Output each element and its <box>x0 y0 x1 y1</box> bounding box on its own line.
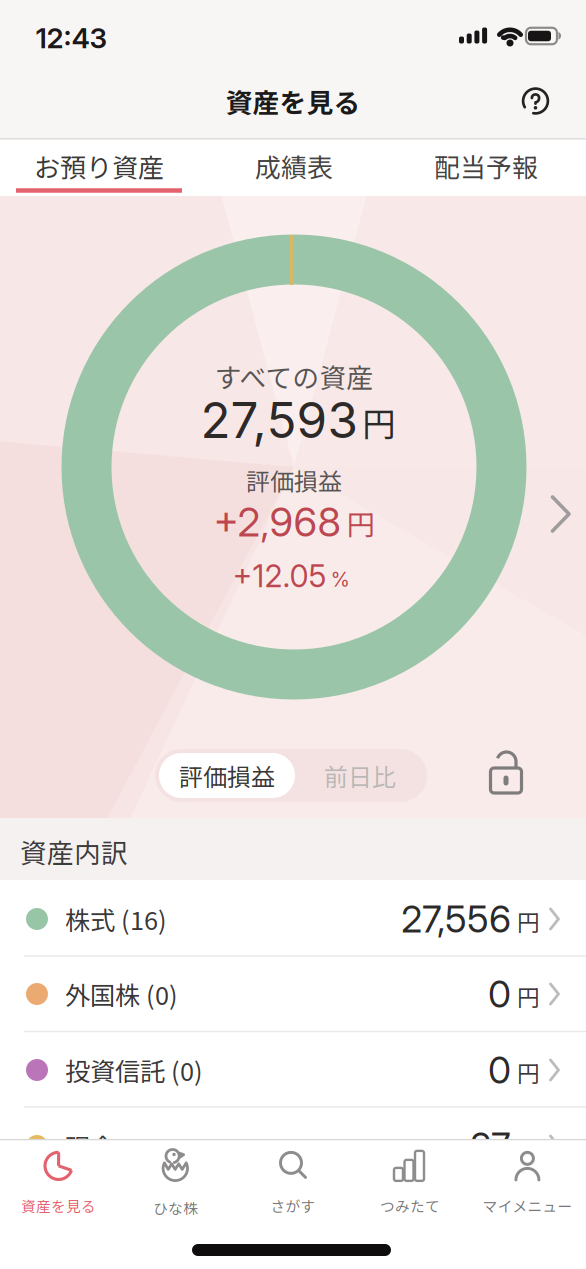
button[interactable]: 株式 (16) <box>0 881 586 956</box>
staticText: すべての資産 <box>214 357 373 395</box>
button[interactable]: マイメニュー <box>469 1141 586 1225</box>
staticText: つみたて <box>380 1195 440 1216</box>
button[interactable]: 成績表 <box>219 138 369 194</box>
staticText: 27,593 <box>200 390 357 450</box>
staticText: 前日比 <box>324 758 396 793</box>
staticText: 成績表 <box>255 147 333 185</box>
staticText: 0 <box>488 1047 511 1093</box>
button[interactable]: ヘルプ <box>521 87 549 115</box>
button[interactable]: 前日比 <box>295 749 425 802</box>
staticText: 資産内訳 <box>20 832 128 871</box>
button[interactable]: さがす <box>234 1141 351 1225</box>
button[interactable]: 評価損益 <box>159 749 295 802</box>
staticText: 投資信託 (0) <box>65 1052 203 1088</box>
staticText: 円 <box>362 398 395 446</box>
staticText: 資産を見る <box>21 1195 96 1216</box>
button[interactable]: 現金 <box>0 1108 586 1183</box>
button[interactable]: ひな株 <box>117 1141 234 1225</box>
staticText: +12.05 <box>232 557 326 594</box>
staticText: 現金 <box>65 1128 115 1164</box>
staticText: マイメニュー <box>482 1195 572 1216</box>
staticText: 円 <box>517 980 540 1013</box>
staticText: 配当予報 <box>434 147 538 185</box>
staticText: 円 <box>517 1056 540 1089</box>
staticText: 27 <box>470 1123 511 1169</box>
button[interactable]: つみたて <box>351 1141 468 1225</box>
staticText: ひな株 <box>153 1197 198 1218</box>
staticText: 27,556 <box>401 896 511 942</box>
staticText: 評価損益 <box>246 463 342 497</box>
staticText: 円 <box>346 503 374 543</box>
staticText: +2,968 <box>213 498 340 546</box>
button[interactable]: 外国株 (0) <box>0 956 586 1031</box>
button[interactable]: 金額を隠す <box>488 749 524 799</box>
staticText: さがす <box>270 1195 315 1216</box>
button[interactable]: 投資信託 (0) <box>0 1032 586 1107</box>
staticText: 株式 (16) <box>65 901 167 937</box>
staticText: 評価損益 <box>179 758 275 793</box>
staticText: 0 <box>488 971 511 1017</box>
button[interactable]: 配当予報 <box>406 138 566 194</box>
staticText: 資産を見る <box>225 82 360 120</box>
button[interactable]: お預り資産 <box>9 138 189 194</box>
button[interactable]: 資産の詳細 <box>550 494 572 534</box>
button[interactable]: 資産を見る <box>0 1141 117 1225</box>
staticText: 円 <box>517 905 540 938</box>
staticText: 外国株 (0) <box>65 976 178 1012</box>
staticText: % <box>330 567 349 592</box>
staticText: お預り資産 <box>34 147 164 185</box>
staticText: 円 <box>517 1132 540 1165</box>
staticText: 12:43 <box>35 21 107 55</box>
